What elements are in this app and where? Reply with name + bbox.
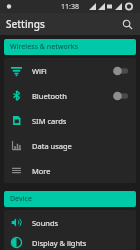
button[interactable]: Display & lights bbox=[4, 235, 136, 250]
staticText: Bluetooth bbox=[32, 91, 67, 101]
button[interactable]: Sounds bbox=[4, 210, 136, 235]
button[interactable]: Bluetooth bbox=[4, 83, 136, 108]
button[interactable]: Toggle Bluetooth bbox=[112, 90, 130, 102]
button[interactable]: Toggle WiFi bbox=[112, 65, 130, 77]
staticText: Wireless & networks bbox=[10, 42, 79, 52]
staticText: Settings bbox=[6, 17, 45, 31]
button[interactable]: More bbox=[4, 158, 136, 183]
staticText: Data usage bbox=[32, 141, 72, 151]
staticText: Display & lights bbox=[32, 238, 87, 248]
staticText: SIM cards bbox=[32, 116, 67, 126]
staticText: More bbox=[32, 166, 51, 176]
staticText: Device bbox=[10, 194, 33, 204]
button[interactable]: Data usage bbox=[4, 133, 136, 158]
button[interactable]: WiFi bbox=[4, 58, 136, 83]
staticText: WiFi bbox=[32, 66, 47, 76]
staticText: 11:38 bbox=[61, 2, 79, 12]
button[interactable]: Search bbox=[118, 15, 136, 33]
staticText: Sounds bbox=[32, 218, 59, 228]
button[interactable]: SIM cards bbox=[4, 108, 136, 133]
